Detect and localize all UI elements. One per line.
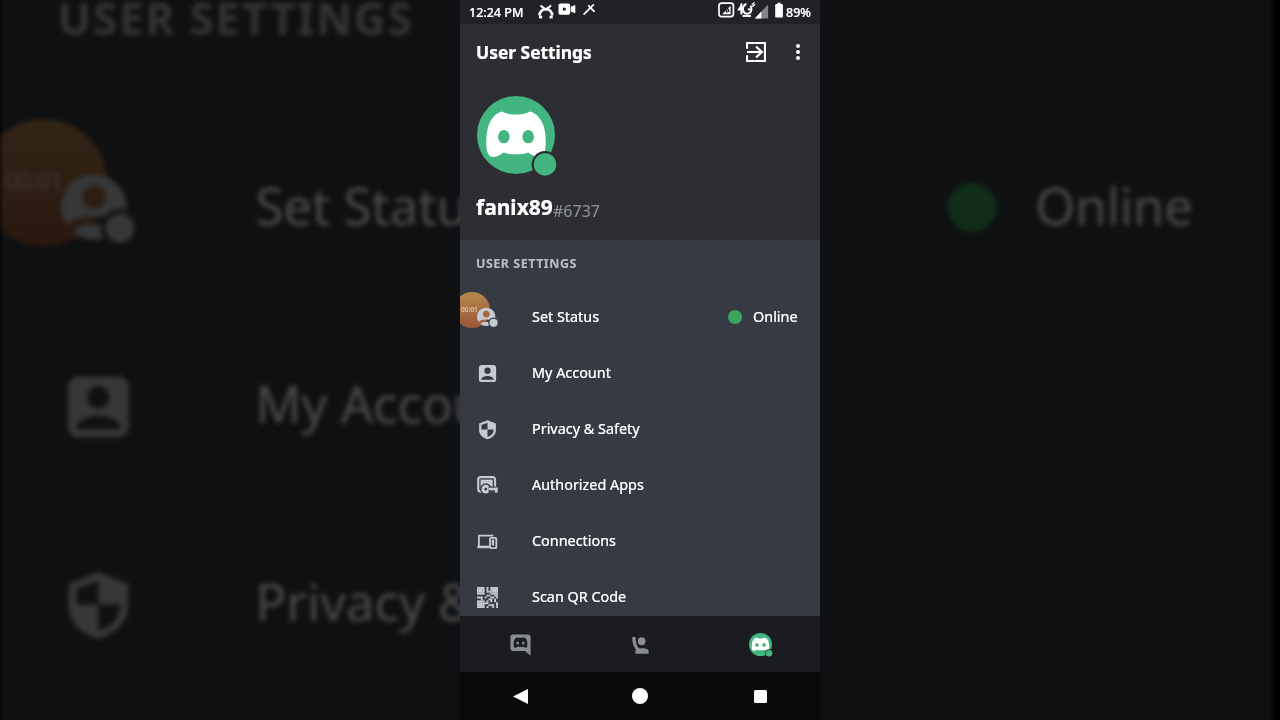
button[interactable]: Home — [580, 672, 700, 720]
staticText: Authorized Apps — [532, 475, 644, 495]
staticText: fanix89 — [476, 193, 553, 222]
button[interactable]: Back — [460, 672, 580, 720]
staticText: 89% — [786, 4, 811, 21]
staticText: Privacy & Safety — [255, 568, 637, 638]
staticText: Connections — [532, 531, 617, 551]
staticText: Set Status — [532, 307, 600, 327]
button[interactable]: Authorized Apps — [1, 702, 1272, 720]
button[interactable]: Privacy & Safety — [460, 401, 820, 457]
staticText: Online — [753, 307, 798, 327]
button[interactable]: Recent apps — [700, 672, 820, 720]
button[interactable]: Log out — [736, 32, 776, 72]
staticText: 00:01 — [5, 165, 65, 197]
button[interactable]: Set Status — [1, 109, 1272, 306]
button[interactable]: Privacy & Safety — [1, 504, 1272, 702]
button[interactable]: My Account — [460, 345, 820, 401]
button[interactable]: My Account — [1, 306, 1272, 504]
staticText: User Settings — [476, 40, 592, 64]
button[interactable]: Friends — [580, 616, 700, 672]
staticText: Set Status — [255, 172, 495, 243]
staticText: My Account — [532, 363, 611, 383]
button[interactable]: Set Status — [460, 289, 820, 345]
staticText: My Account — [255, 370, 534, 440]
button[interactable]: Authorized Apps — [460, 457, 820, 513]
staticText: USER SETTINGS — [58, 0, 414, 49]
button[interactable]: Servers — [460, 616, 580, 672]
staticText: Online — [1036, 172, 1194, 243]
button[interactable]: Scan QR Code — [460, 569, 820, 625]
staticText: USER SETTINGS — [476, 255, 577, 272]
staticText: 00:01 — [461, 305, 478, 314]
staticText: 12:24 PM — [469, 4, 524, 21]
button[interactable]: More options — [778, 32, 818, 72]
button[interactable]: Profile — [700, 616, 820, 672]
staticText: Privacy & Safety — [532, 419, 640, 439]
button[interactable]: Connections — [460, 513, 820, 569]
staticText: #6737 — [553, 200, 600, 222]
staticText: Scan QR Code — [532, 587, 627, 607]
